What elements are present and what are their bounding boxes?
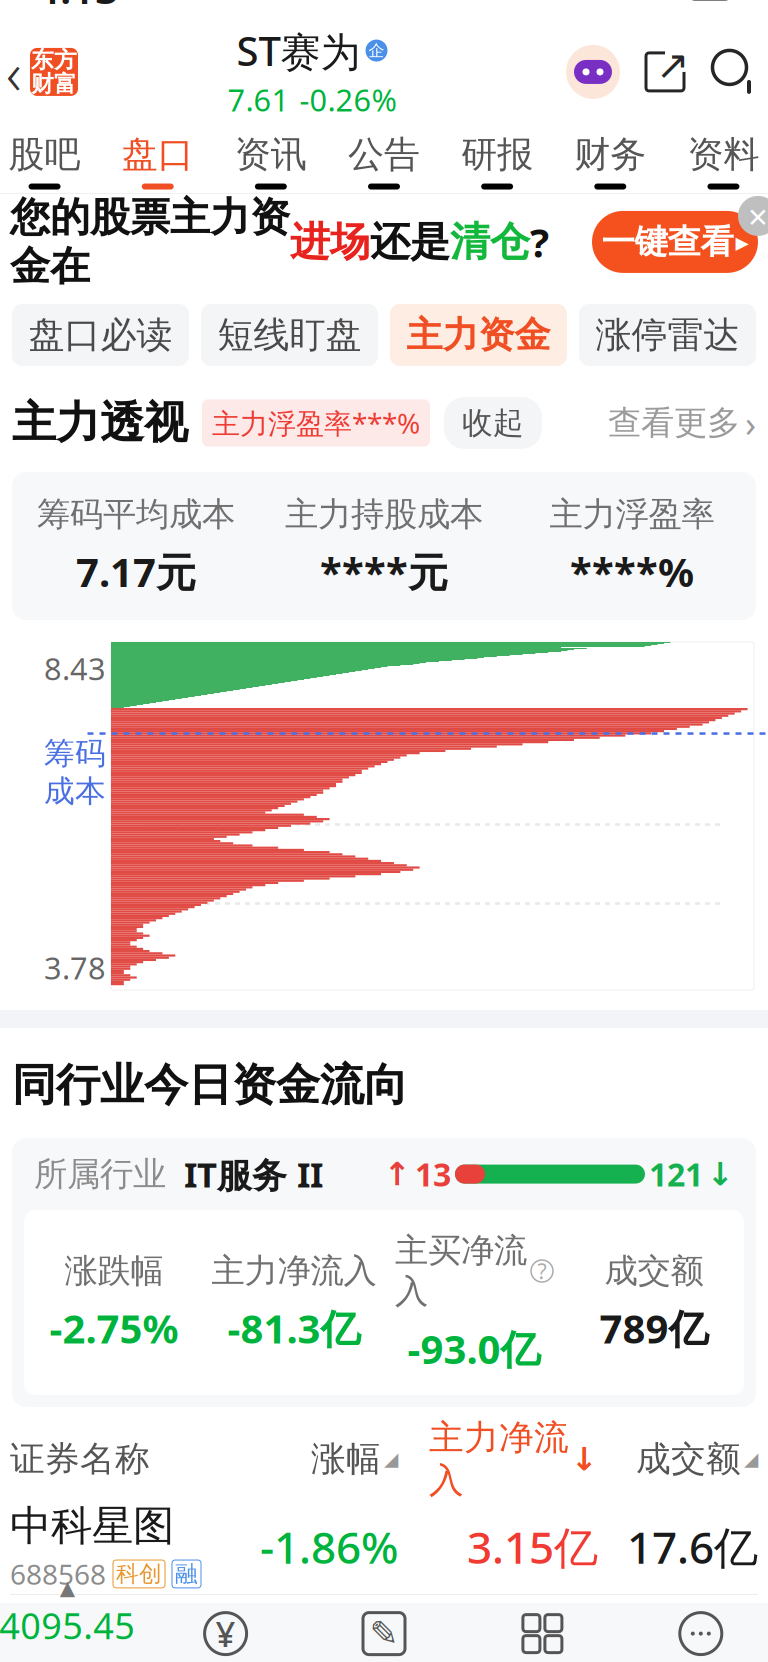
staticText: ST赛为 [236, 24, 360, 77]
staticText: 4095.45 [0, 1601, 135, 1649]
staticText: ? [537, 1257, 546, 1285]
button[interactable]: 涨停雷达 [579, 304, 756, 366]
staticText: 主买净流入 [395, 1230, 527, 1312]
staticText: 7.61 [227, 79, 289, 120]
staticText: ▸ [735, 227, 748, 257]
staticText: ◢ [384, 1448, 398, 1470]
staticText: ‹ [6, 33, 22, 111]
button[interactable]: ¥ [146, 1611, 305, 1662]
staticText: 涨停雷达 [595, 313, 739, 357]
staticText: 盘口必读 [28, 313, 172, 357]
button[interactable]: 资讯 [214, 132, 327, 189]
button[interactable]: 财务 [554, 132, 667, 189]
staticText: 科创 [116, 1560, 162, 1588]
staticText: ****元 [320, 545, 448, 598]
button[interactable]: Search [710, 48, 758, 96]
staticText: ? [530, 215, 549, 268]
staticText: 688568 [10, 1555, 106, 1593]
staticText: × [748, 193, 768, 239]
button[interactable]: 盘口 [101, 132, 214, 189]
staticText: 清仓 [450, 217, 530, 266]
staticText: 短线盯盘 [217, 313, 361, 357]
staticText: 3.15亿 [467, 1517, 598, 1576]
button[interactable]: 公告 [327, 132, 440, 189]
staticText: ✎ [369, 1614, 398, 1653]
button[interactable]: 主力净流入 [398, 1416, 598, 1502]
staticText: -1.86% [260, 1517, 398, 1576]
staticText: 您的股票主力资金在 [10, 193, 290, 291]
staticText: ↗ [656, 42, 690, 88]
button[interactable]: 一键查看 [592, 211, 758, 273]
staticText: -2.75% [49, 1301, 178, 1355]
staticText: 还是 [370, 217, 450, 266]
staticText: 主力浮盈率 [549, 494, 714, 535]
staticText: 主力净流入 [211, 1250, 376, 1291]
button[interactable]: 功能 [463, 1613, 622, 1662]
staticText: ↓ [707, 1156, 734, 1192]
staticText: 中科星图 [10, 1501, 174, 1551]
staticText: 涨跌幅 [64, 1250, 163, 1291]
staticText: 主力持股成本 [285, 494, 483, 535]
staticText: 财务 [574, 132, 646, 176]
staticText: 13 [415, 1153, 451, 1195]
button[interactable]: Share [642, 49, 688, 95]
button[interactable]: 成交额 [598, 1438, 758, 1480]
button[interactable]: 盘口必读 [12, 304, 189, 366]
staticText: 17.6亿 [627, 1517, 758, 1576]
staticText: 4:13 [36, 0, 119, 15]
staticText: 8.43 [44, 648, 106, 689]
staticText: IT服务 II [166, 1151, 323, 1197]
staticText: 研报 [461, 132, 533, 176]
staticText: 融 [175, 1560, 198, 1588]
staticText: ¥ [216, 1611, 236, 1657]
button[interactable]: 资料 [667, 132, 768, 189]
button[interactable]: 设自选 [622, 1613, 768, 1662]
staticText: -81.3亿 [227, 1301, 360, 1355]
staticText: 7.17元 [76, 545, 196, 598]
staticText: -93.0亿 [407, 1322, 540, 1375]
button[interactable]: 涨幅 [248, 1438, 398, 1480]
staticText: 成交额 [604, 1250, 703, 1291]
button[interactable]: ▲ [0, 1577, 146, 1662]
staticText: 财富 [31, 70, 77, 98]
staticText: 主力净流入 [429, 1416, 569, 1502]
staticText: ****% [570, 545, 694, 598]
staticText: 企 [368, 41, 384, 60]
button[interactable]: 查看更多 [608, 399, 756, 447]
staticText: 收起 [462, 404, 524, 442]
staticText: 成交额 [636, 1438, 741, 1480]
staticText: 资讯 [235, 132, 307, 176]
staticText: ↑ [384, 1156, 411, 1192]
staticText: ↓ [571, 1441, 598, 1477]
staticText: -0.26% [299, 79, 396, 120]
staticText: 查看更多 [608, 402, 740, 443]
staticText: 涨幅 [311, 1438, 381, 1480]
staticText: 3.78 [44, 947, 106, 988]
button[interactable]: 中科星图 [0, 1499, 768, 1594]
staticText: 主力透视 [12, 396, 188, 450]
button[interactable]: 研报 [441, 132, 554, 189]
button[interactable]: Back [0, 33, 78, 111]
button[interactable]: 短线盯盘 [201, 304, 378, 366]
button[interactable]: AI assistant [566, 45, 620, 99]
staticText: ▲ [60, 1577, 75, 1599]
staticText: 所属行业 [34, 1154, 166, 1194]
button[interactable]: 主力资金 [390, 304, 567, 366]
staticText: 证券名称 [10, 1438, 150, 1480]
staticText: 主力资金 [406, 313, 550, 357]
staticText: 资料 [687, 132, 759, 176]
staticText: 121 [649, 1153, 703, 1195]
staticText: 主力浮盈率***% [212, 404, 420, 442]
button[interactable]: 股吧 [0, 132, 101, 189]
staticText: 公告 [348, 132, 420, 176]
staticText: › [745, 399, 756, 447]
staticText: 东方 [31, 46, 77, 74]
staticText: 筹码平均成本 [37, 494, 235, 535]
staticText: 同行业今日资金流向 [12, 1058, 408, 1112]
button[interactable]: ✎ [305, 1613, 463, 1662]
button[interactable]: Close [736, 194, 768, 238]
staticText: 盘口 [122, 132, 194, 176]
button[interactable]: 收起 [444, 397, 542, 449]
staticText: 一键查看 [601, 221, 733, 262]
